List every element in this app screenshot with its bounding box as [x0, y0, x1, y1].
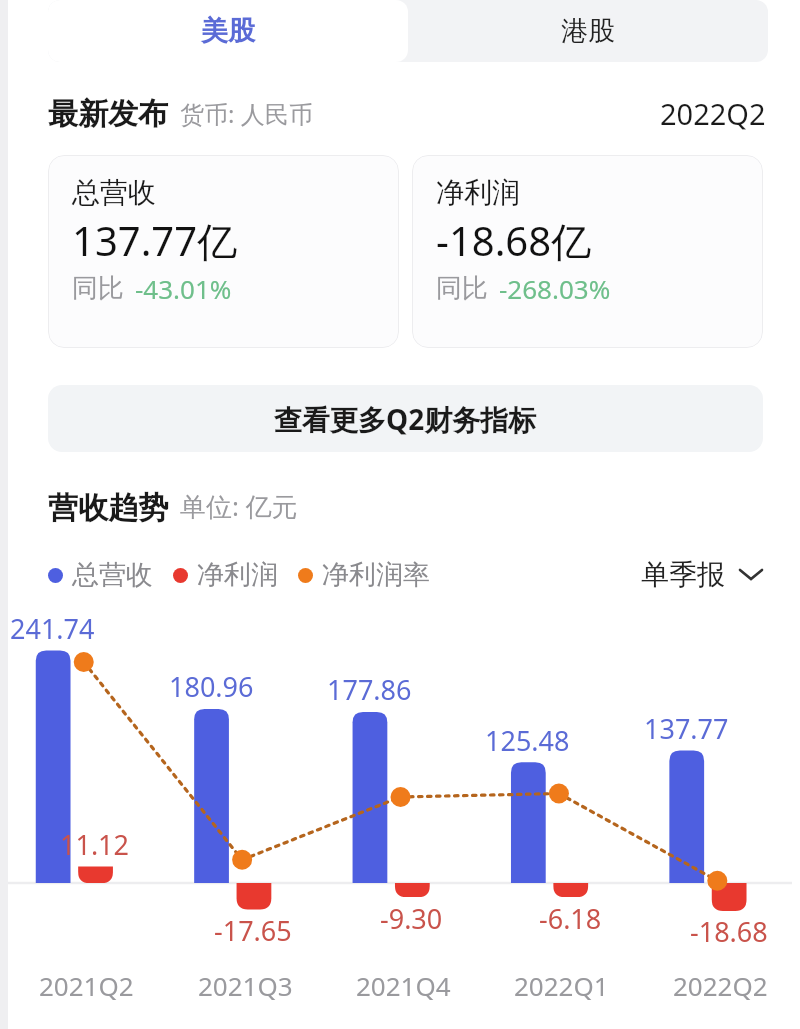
button[interactable]: 总营收 — [48, 155, 399, 348]
staticText: 查看更多Q2财务指标 — [274, 400, 537, 438]
staticText: -18.68亿 — [436, 213, 592, 268]
staticText: 单位: 亿元 — [180, 488, 298, 524]
staticText: 净利润 — [436, 175, 520, 210]
staticText: -6.18 — [539, 900, 602, 937]
staticText: 总营收 — [72, 175, 156, 210]
staticText: -18.68 — [690, 913, 768, 950]
staticText: 货币: 人民币 — [180, 97, 313, 130]
staticText: 137.77亿 — [72, 213, 238, 268]
button[interactable]: 单季报 — [637, 551, 766, 598]
staticText: 2022Q1 — [514, 968, 609, 1003]
staticText: 11.12 — [60, 826, 130, 863]
staticText: 同比 — [72, 272, 124, 305]
staticText: 137.77 — [644, 710, 729, 747]
staticText: 营收趋势 — [48, 489, 168, 527]
staticText: -17.65 — [214, 912, 292, 949]
staticText: 2022Q2 — [673, 968, 768, 1003]
staticText: 2022Q2 — [660, 94, 766, 133]
staticText: 2021Q4 — [356, 968, 451, 1003]
staticText: 净利润率 — [322, 558, 430, 592]
staticText: 美股 — [201, 14, 255, 48]
staticText: 2021Q3 — [198, 968, 293, 1003]
staticText: 同比 — [436, 272, 488, 305]
staticText: 最新发布 — [48, 95, 168, 133]
staticText: 总营收 — [72, 558, 153, 592]
button[interactable]: 查看更多Q2财务指标 — [48, 385, 763, 452]
staticText: 125.48 — [485, 722, 570, 759]
staticText: -43.01% — [135, 271, 232, 306]
staticText: -268.03% — [499, 271, 611, 306]
staticText: 港股 — [561, 14, 615, 48]
staticText: 2021Q2 — [39, 968, 134, 1003]
staticText: 241.74 — [10, 610, 95, 647]
staticText: 177.86 — [327, 671, 412, 708]
button[interactable]: 美股 — [48, 0, 408, 62]
staticText: 净利润 — [197, 558, 278, 592]
button[interactable]: 港股 — [408, 0, 768, 62]
staticText: -9.30 — [380, 900, 443, 937]
staticText: 180.96 — [169, 668, 254, 705]
staticText: 单季报 — [641, 557, 725, 592]
other: Change report period — [740, 568, 762, 581]
button[interactable]: 净利润 — [412, 155, 763, 348]
